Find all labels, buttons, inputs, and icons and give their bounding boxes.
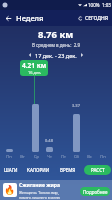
button[interactable]: Подробнее	[80, 187, 110, 196]
button[interactable]: ВРЕМЯ	[56, 165, 80, 175]
staticText: Сжигание жира	[19, 182, 61, 189]
staticText: 3.37	[72, 103, 80, 108]
staticText: Женщины. Только жир, ничего лишнего в ме…	[19, 190, 61, 200]
staticText: В среднем в день: 2.9	[32, 42, 81, 48]
button[interactable]: РАССТ	[84, 165, 111, 175]
staticText: СЕГОДНЯ	[85, 15, 109, 22]
staticText: КАЛОРИИ	[27, 167, 50, 173]
staticText: ВРЕМЯ	[60, 167, 76, 173]
staticText: 🔥	[4, 185, 16, 196]
button[interactable]: ШАГИ	[1, 165, 21, 175]
staticText: Пт	[61, 154, 66, 159]
staticText: 8.76 км	[38, 28, 74, 41]
staticText: РАССТ	[91, 167, 105, 173]
staticText: ШАГИ	[4, 167, 18, 173]
staticText: Ср	[34, 154, 39, 159]
button[interactable]: Next week	[77, 50, 87, 60]
button[interactable]: Previous week	[25, 50, 35, 60]
staticText: 4.21 км	[22, 61, 47, 70]
staticText: Вс	[87, 154, 92, 159]
staticText: Пн	[100, 154, 106, 159]
button[interactable]: Day bar	[6, 149, 13, 152]
staticText: Неделя	[16, 13, 44, 23]
button[interactable]: Day bar	[46, 147, 53, 152]
staticText: Сб	[74, 154, 79, 159]
button[interactable]: Day bar	[32, 104, 39, 152]
button[interactable]: КАЛОРИИ	[25, 165, 52, 175]
staticText: 100%	[88, 2, 100, 8]
staticText: Вт	[20, 154, 25, 159]
button[interactable]: СЕГОДНЯ	[76, 13, 112, 24]
staticText: 1:03	[102, 2, 111, 8]
button[interactable]: 🔥	[0, 180, 112, 200]
button[interactable]: Day bar	[73, 114, 80, 152]
staticText: 16 дек.	[28, 70, 42, 75]
staticText: Пн	[6, 154, 12, 159]
button[interactable]: Back	[0, 10, 16, 26]
staticText: 17 дек. - 23 дек.	[35, 52, 77, 59]
staticText: 0.48	[45, 138, 53, 143]
staticText: Чт	[47, 154, 52, 159]
button[interactable]: 4.21 км	[20, 60, 48, 76]
staticText: Подробнее	[83, 189, 108, 195]
